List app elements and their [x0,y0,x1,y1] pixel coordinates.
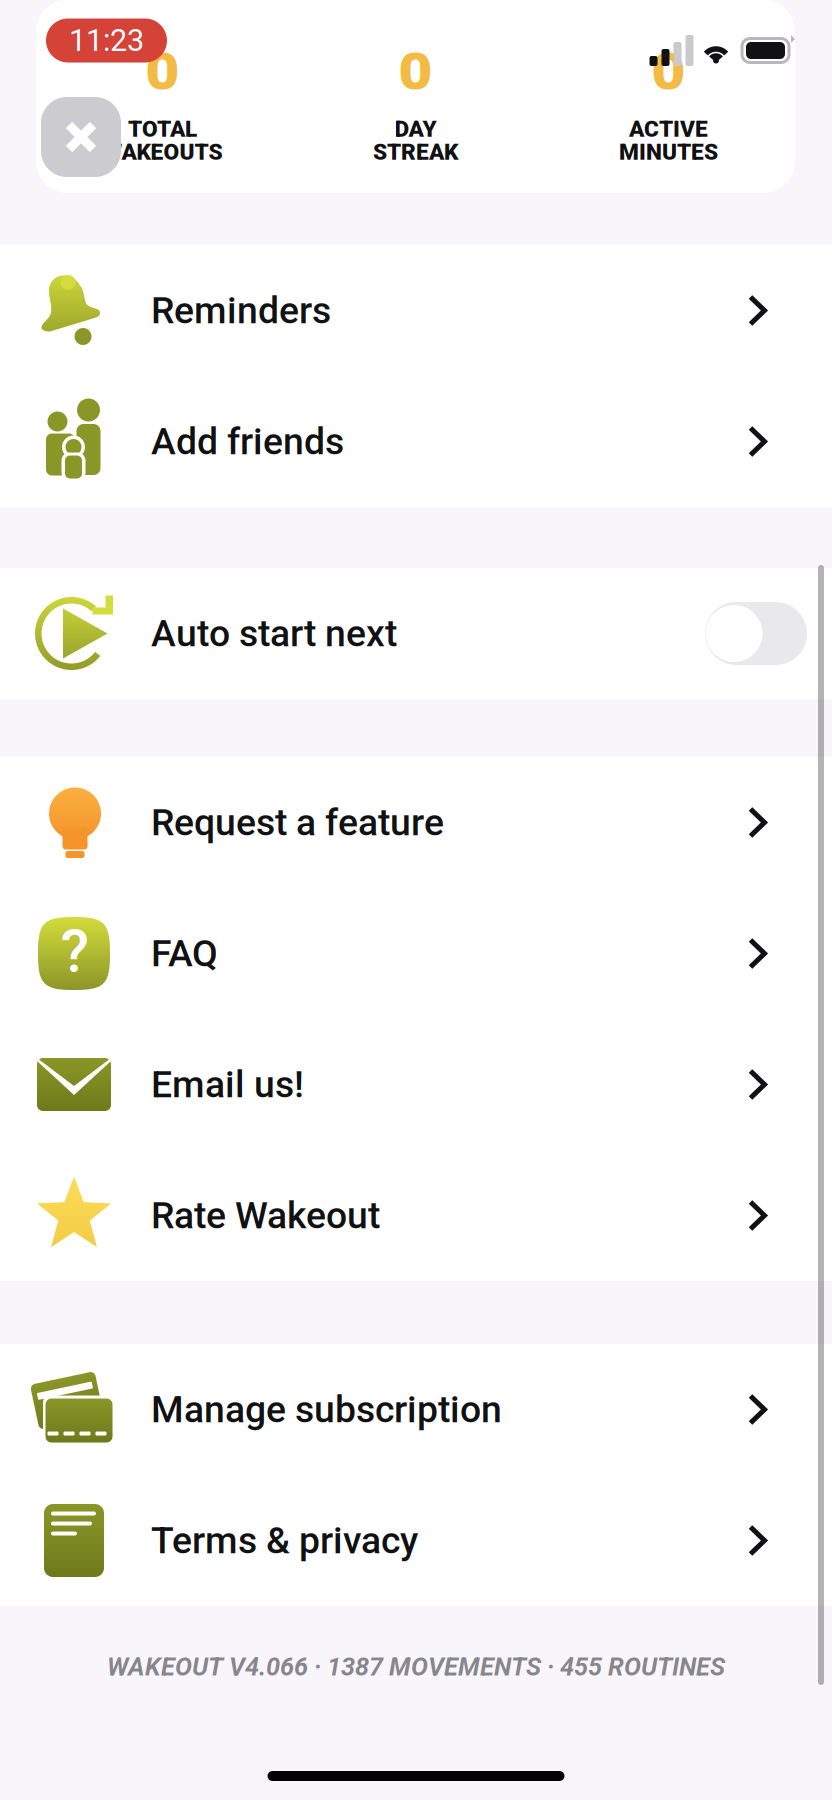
button[interactable]: ? [0,888,832,1019]
button[interactable]: Rate Wakeout [0,1150,832,1281]
staticText: TOTAL [128,116,197,142]
staticText: 0 [398,44,432,99]
staticText: ? [60,917,89,986]
staticText: FAQ [151,932,218,975]
staticText: Manage subscription [151,1388,502,1431]
staticText: DAY [394,116,436,142]
button[interactable]: Close [41,97,121,177]
staticText: 0 [651,44,685,99]
staticText: Reminders [151,289,331,332]
button[interactable]: Reminders [0,245,832,376]
staticText: Request a feature [151,801,444,844]
staticText: 0 [145,44,179,99]
button[interactable]: Manage subscription [0,1344,832,1475]
staticText: Rate Wakeout [151,1194,380,1237]
staticText: WAKEOUTS [102,139,222,165]
button[interactable]: Add friends [0,376,832,507]
staticText: Email us! [151,1063,304,1106]
staticText: STREAK [373,139,458,165]
staticText: Auto start next [151,612,397,655]
button[interactable]: Request a feature [0,757,832,888]
staticText: ACTIVE [629,116,708,142]
staticText: Terms & privacy [151,1519,418,1562]
button[interactable]: Auto start next [0,568,832,699]
staticText: MINUTES [619,139,718,165]
staticText: 11:23 [69,22,144,58]
staticText: Add friends [151,420,344,463]
staticText: WAKEOUT V4.066 · 1387 MOVEMENTS · 455 RO… [107,1652,725,1682]
button[interactable]: Email us! [0,1019,832,1150]
button[interactable]: Terms & privacy [0,1475,832,1606]
